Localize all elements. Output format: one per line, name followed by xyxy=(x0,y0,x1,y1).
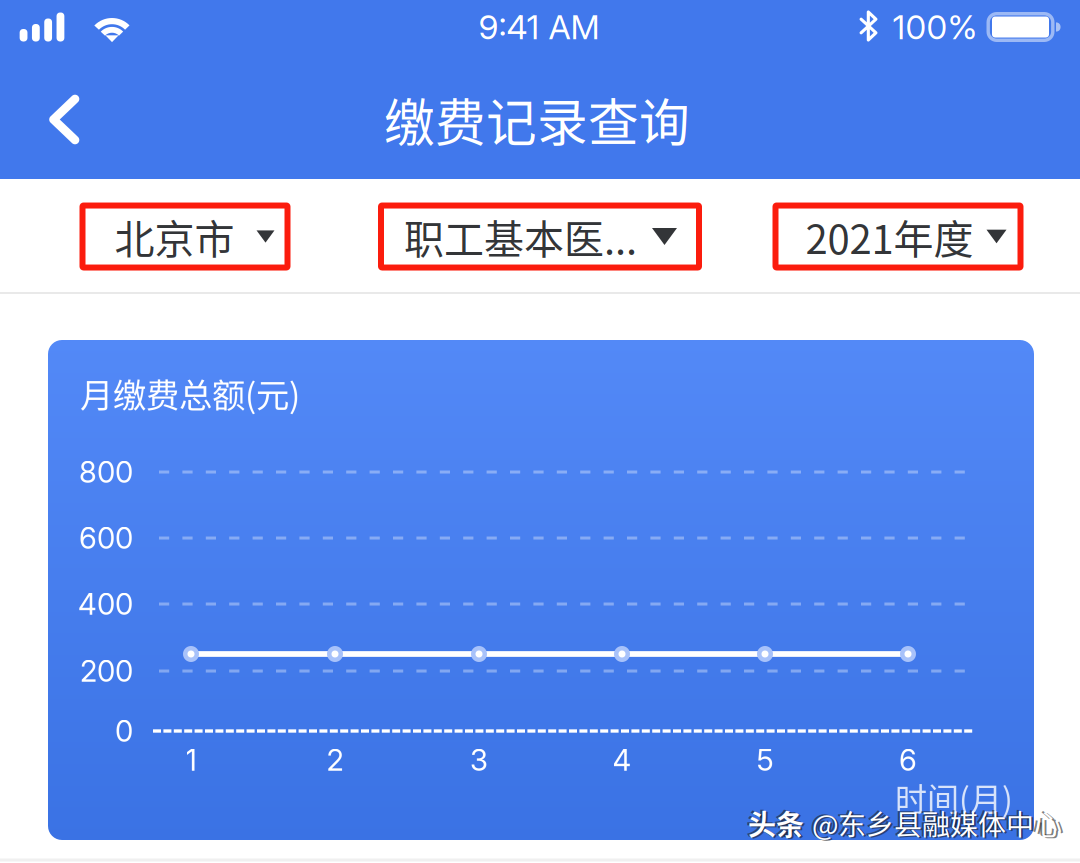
staticText: 职工基本医... xyxy=(404,207,637,265)
staticText: 9:41 AM xyxy=(478,7,599,47)
staticText: 5 xyxy=(756,742,773,778)
staticText: 3 xyxy=(470,742,488,778)
staticText: 北京市 xyxy=(114,207,234,265)
staticText: 头条 xyxy=(748,803,804,843)
staticText: 400 xyxy=(78,586,133,622)
staticText: 缴费记录查询 xyxy=(384,83,690,156)
staticText: @东乡县融媒体中心 xyxy=(812,803,1062,843)
staticText: 200 xyxy=(80,653,133,689)
button[interactable]: 北京市 xyxy=(79,202,290,270)
staticText: 2 xyxy=(326,742,343,778)
staticText: 800 xyxy=(79,454,133,490)
staticText: 100% xyxy=(892,7,977,47)
staticText: 1 xyxy=(185,742,196,778)
staticText: @东乡县融媒体中心 xyxy=(810,802,1060,842)
staticText: 2021年度 xyxy=(805,207,973,265)
staticText: 0 xyxy=(115,713,133,749)
button[interactable]: 职工基本医... xyxy=(378,202,702,270)
staticText: 600 xyxy=(79,520,133,556)
staticText: 6 xyxy=(899,742,917,778)
staticText: 月缴费总额(元) xyxy=(80,369,300,417)
staticText: 4 xyxy=(612,742,631,778)
staticText: 头条 xyxy=(746,802,802,842)
button[interactable]: 2021年度 xyxy=(772,202,1023,270)
staticText: 头条 xyxy=(750,804,806,844)
staticText: @东乡县融媒体中心 xyxy=(814,804,1064,844)
button[interactable]: Back xyxy=(12,64,116,174)
staticText: 时间(月) xyxy=(895,774,1013,820)
